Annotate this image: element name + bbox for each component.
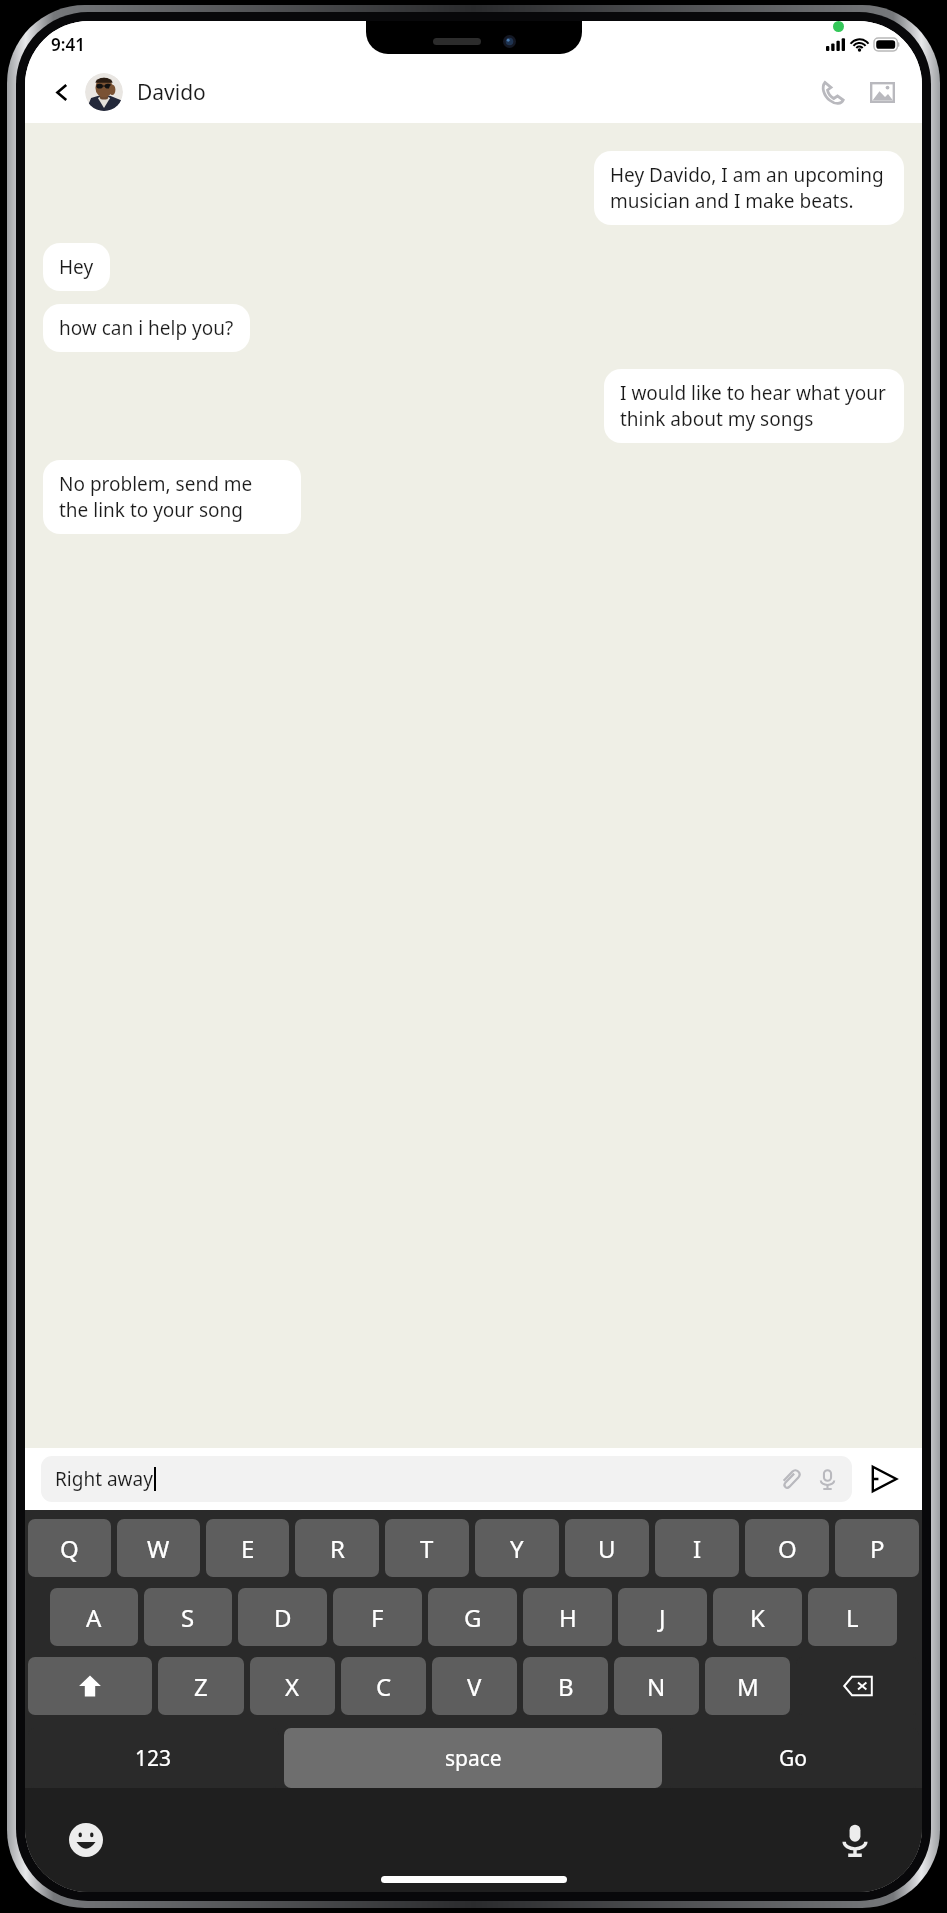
staticText: Hey	[59, 254, 94, 280]
staticText: N	[647, 1670, 666, 1703]
staticText: R	[330, 1532, 345, 1565]
staticText: J	[659, 1601, 666, 1634]
staticText: Davido	[137, 78, 206, 107]
button[interactable]: E	[206, 1519, 289, 1577]
button[interactable]: X	[250, 1657, 335, 1715]
button[interactable]: Hey Davido, I am an upcoming musician an…	[594, 151, 904, 225]
button[interactable]: space	[284, 1728, 662, 1788]
staticText: F	[371, 1601, 384, 1634]
button[interactable]: Right away	[41, 1456, 852, 1502]
button[interactable]: F	[333, 1588, 422, 1646]
button[interactable]: S	[144, 1588, 232, 1646]
button[interactable]: 123	[28, 1728, 279, 1788]
staticText: X	[285, 1670, 300, 1703]
staticText: No problem, send me the link to your son…	[59, 471, 285, 523]
button[interactable]: Z	[158, 1657, 244, 1715]
staticText: S	[181, 1601, 195, 1634]
button[interactable]: Call	[812, 72, 852, 112]
button[interactable]: Backspace	[796, 1657, 919, 1715]
button[interactable]: Y	[475, 1519, 559, 1577]
button[interactable]: P	[835, 1519, 919, 1577]
button[interactable]: U	[565, 1519, 649, 1577]
staticText: B	[558, 1670, 574, 1703]
staticText: U	[598, 1532, 616, 1565]
button[interactable]: I	[655, 1519, 739, 1577]
button[interactable]: Go	[667, 1728, 919, 1788]
staticText: Y	[510, 1532, 524, 1565]
staticText: P	[870, 1532, 885, 1565]
staticText: Go	[779, 1744, 807, 1773]
button[interactable]: M	[705, 1657, 790, 1715]
staticText: V	[467, 1670, 482, 1703]
staticText: I	[693, 1532, 702, 1565]
button[interactable]: Voice input	[832, 1817, 878, 1863]
button[interactable]: Q	[28, 1519, 111, 1577]
staticText: H	[559, 1601, 577, 1634]
staticText: T	[420, 1532, 434, 1565]
staticText: C	[376, 1670, 392, 1703]
button[interactable]: B	[523, 1657, 608, 1715]
button[interactable]: K	[713, 1588, 802, 1646]
button[interactable]: Back	[45, 75, 79, 109]
staticText: I would like to hear what your think abo…	[620, 380, 888, 432]
staticText: G	[464, 1601, 482, 1634]
staticText: Right away	[55, 1466, 153, 1492]
button[interactable]: T	[385, 1519, 469, 1577]
staticText: K	[750, 1601, 765, 1634]
button[interactable]: R	[295, 1519, 379, 1577]
staticText: A	[86, 1601, 102, 1634]
staticText: Z	[194, 1670, 208, 1703]
button[interactable]: Voice message	[812, 1464, 842, 1494]
button[interactable]: O	[745, 1519, 829, 1577]
button[interactable]: I would like to hear what your think abo…	[604, 369, 904, 443]
staticText: O	[778, 1532, 797, 1565]
staticText: how can i help you?	[59, 315, 234, 341]
staticText: E	[241, 1532, 255, 1565]
button[interactable]: Emoji	[63, 1817, 109, 1863]
staticText: D	[274, 1601, 292, 1634]
button[interactable]: Shift	[28, 1657, 152, 1715]
button[interactable]: G	[428, 1588, 517, 1646]
staticText: W	[147, 1532, 170, 1565]
button[interactable]: Hey	[43, 243, 110, 291]
button[interactable]: N	[614, 1657, 699, 1715]
button[interactable]: H	[523, 1588, 612, 1646]
button[interactable]: J	[618, 1588, 707, 1646]
button[interactable]: W	[117, 1519, 200, 1577]
staticText: L	[846, 1601, 859, 1634]
staticText: Q	[60, 1532, 79, 1565]
button[interactable]: L	[808, 1588, 897, 1646]
button[interactable]: Send	[862, 1457, 906, 1501]
staticText: 123	[135, 1744, 172, 1773]
button[interactable]: Photos	[862, 72, 902, 112]
button[interactable]: how can i help you?	[43, 304, 250, 352]
button[interactable]: C	[341, 1657, 426, 1715]
button[interactable]: V	[432, 1657, 517, 1715]
staticText: 9:41	[51, 33, 85, 56]
staticText: Hey Davido, I am an upcoming musician an…	[610, 162, 888, 214]
staticText: M	[737, 1670, 759, 1703]
button[interactable]: No problem, send me the link to your son…	[43, 460, 301, 534]
button[interactable]: Attach	[774, 1464, 804, 1494]
button[interactable]: D	[238, 1588, 327, 1646]
staticText: space	[445, 1744, 502, 1773]
button[interactable]: A	[50, 1588, 138, 1646]
